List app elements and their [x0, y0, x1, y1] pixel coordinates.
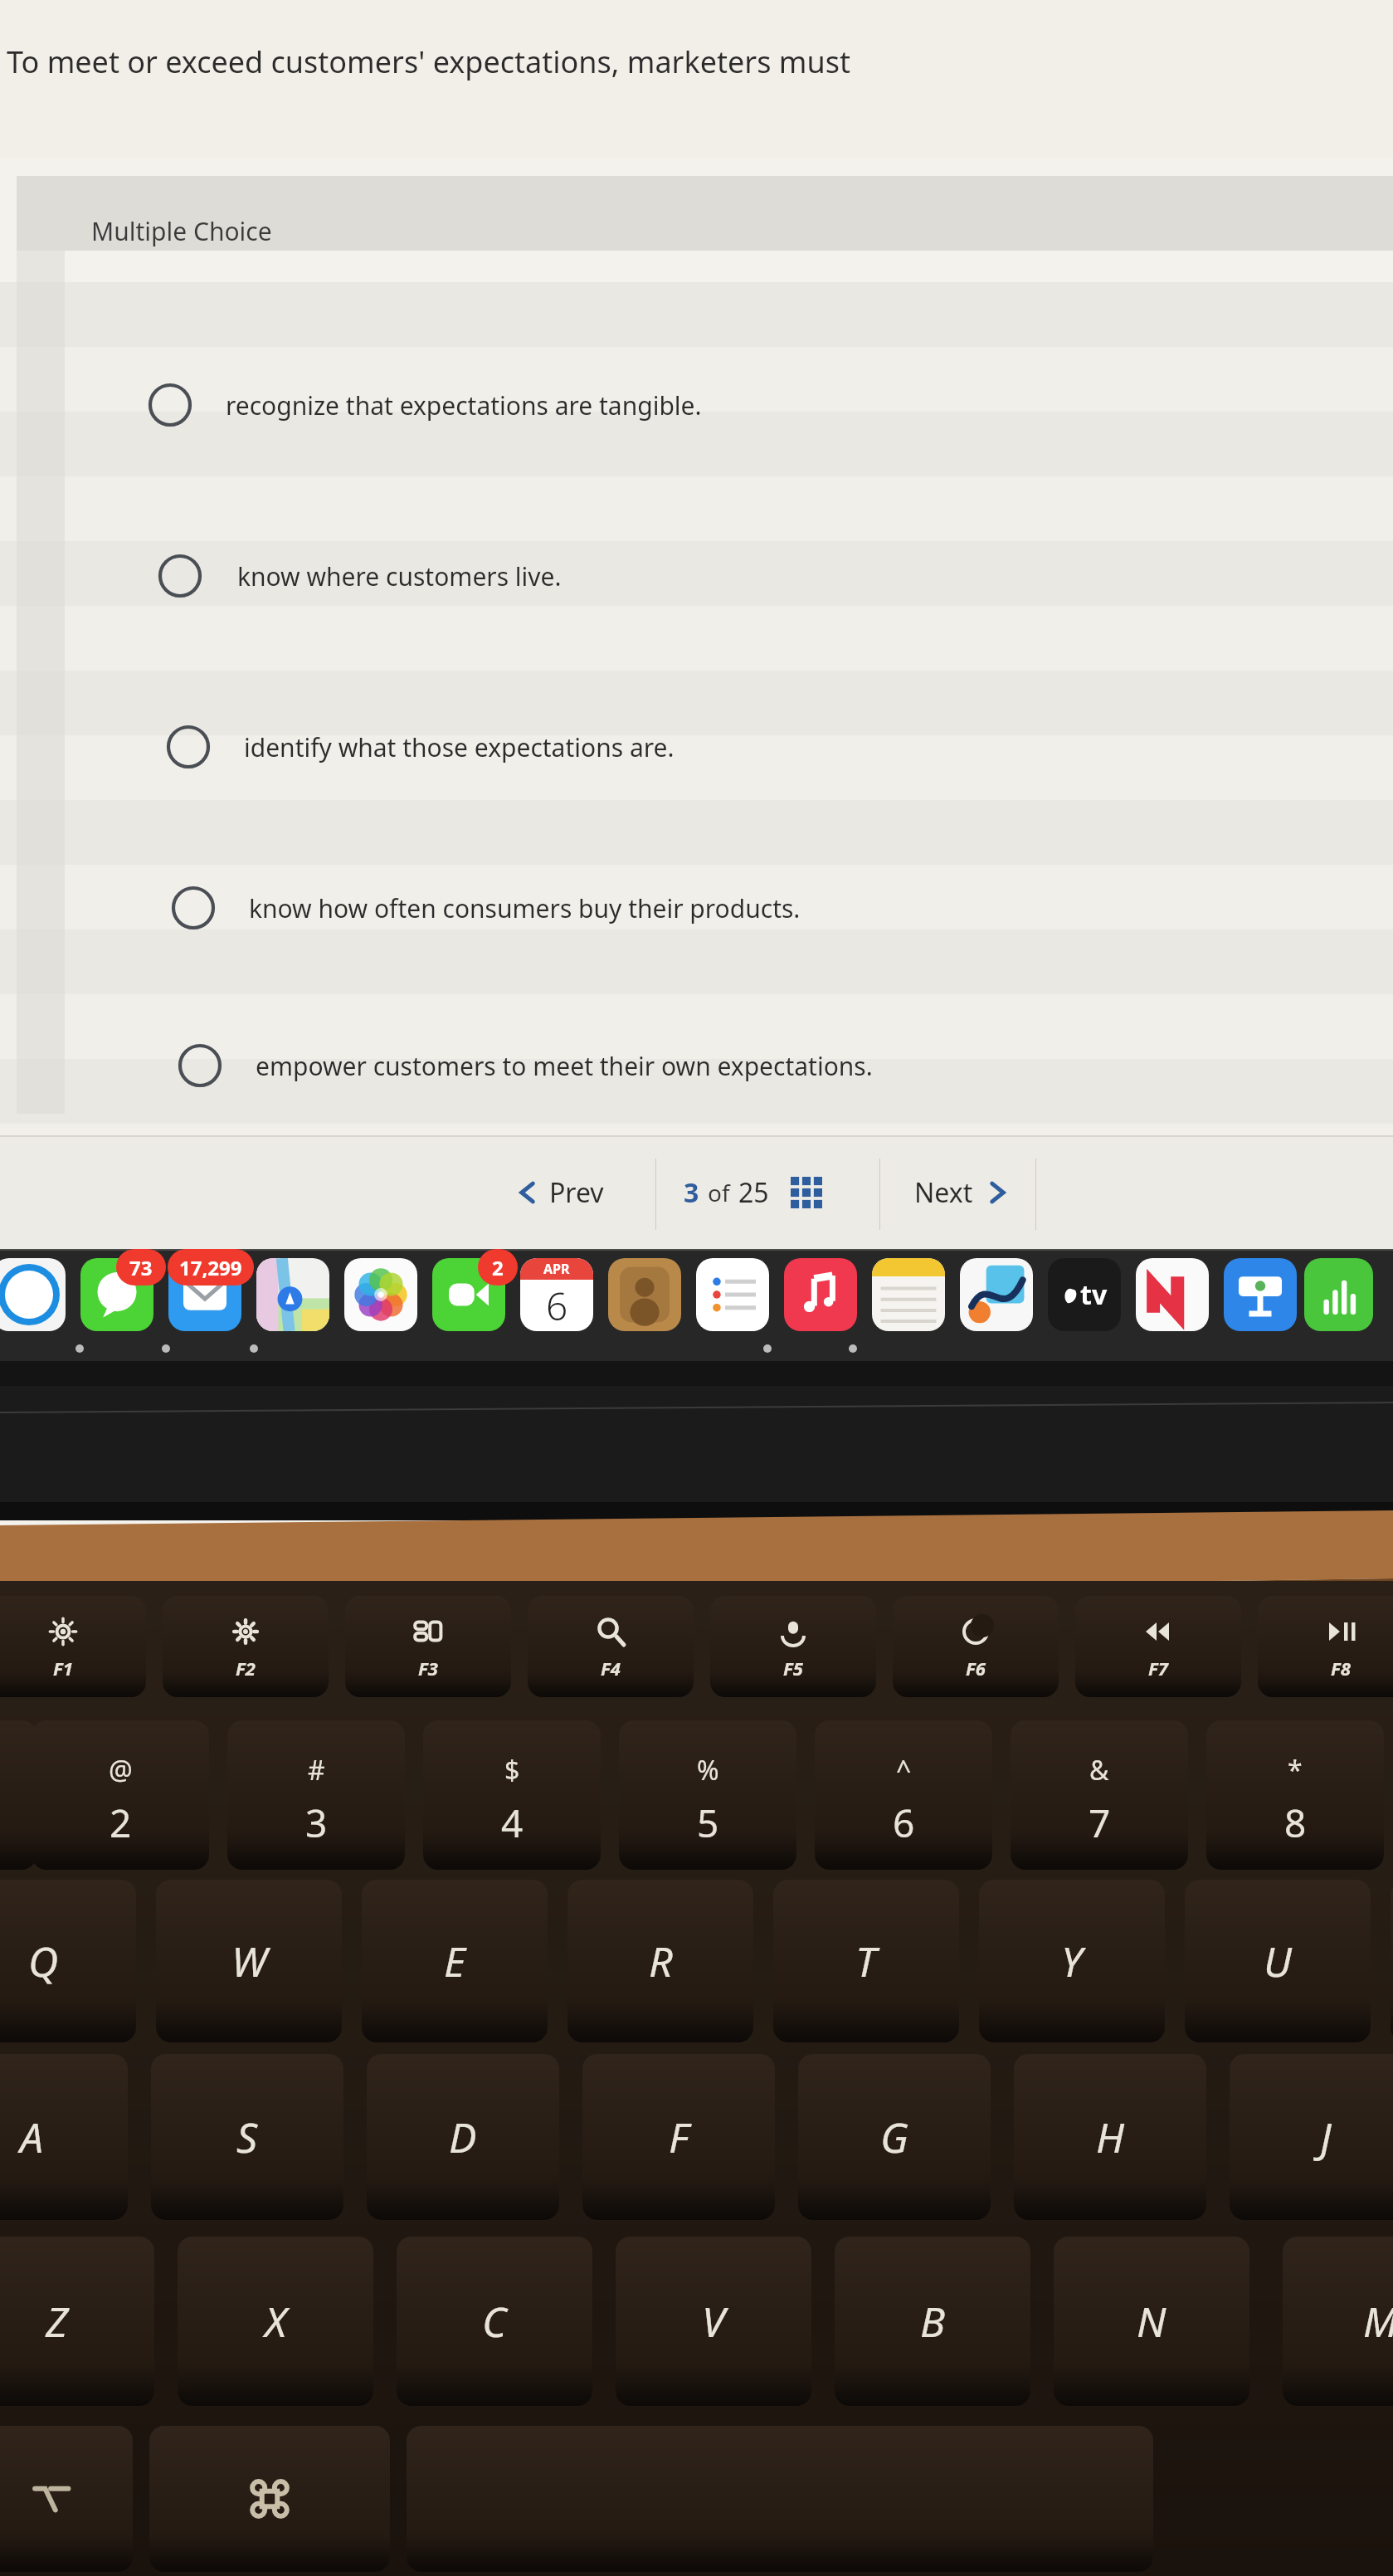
- button[interactable]: W: [156, 1880, 342, 2042]
- staticText: empower customers to meet their own expe…: [256, 1049, 873, 1083]
- button[interactable]: [337, 1242, 425, 1357]
- button[interactable]: [1391, 1880, 1393, 2042]
- button[interactable]: G: [798, 2054, 991, 2220]
- button[interactable]: X: [178, 2237, 373, 2406]
- staticText: tv: [1080, 1276, 1108, 1313]
- staticText: F7: [1148, 1656, 1168, 1681]
- button[interactable]: S: [151, 2054, 343, 2220]
- staticText: &: [1089, 1752, 1109, 1788]
- staticText: N: [1137, 2293, 1167, 2349]
- button[interactable]: 73: [73, 1242, 161, 1357]
- staticText: F6: [966, 1656, 986, 1681]
- button[interactable]: T: [773, 1880, 959, 2042]
- button[interactable]: E: [362, 1880, 548, 2042]
- button[interactable]: F8: [1258, 1596, 1393, 1697]
- staticText: F: [669, 2109, 689, 2165]
- button[interactable]: tv: [1040, 1242, 1128, 1357]
- button[interactable]: recognize that expectations are tangible…: [50, 357, 1393, 453]
- button[interactable]: F: [582, 2054, 775, 2220]
- staticText: Prev: [549, 1174, 604, 1211]
- button[interactable]: V: [616, 2237, 811, 2406]
- staticText: Y: [1061, 1933, 1083, 1989]
- button[interactable]: [777, 1242, 865, 1357]
- staticText: 7: [1089, 1797, 1111, 1849]
- button[interactable]: 2: [425, 1242, 513, 1357]
- button[interactable]: know how often consumers buy their produ…: [50, 860, 1393, 956]
- button[interactable]: [0, 2426, 133, 2572]
- button[interactable]: [1216, 1242, 1304, 1357]
- staticText: 8: [1284, 1797, 1307, 1849]
- button[interactable]: #: [227, 1720, 405, 1870]
- button[interactable]: know where customers live.: [50, 528, 1393, 624]
- button[interactable]: F7: [1075, 1596, 1241, 1697]
- button[interactable]: A: [0, 2054, 128, 2220]
- button[interactable]: 17,299: [161, 1242, 249, 1357]
- button[interactable]: ^: [815, 1720, 992, 1870]
- staticText: 25: [738, 1174, 769, 1211]
- staticText: @: [109, 1752, 133, 1788]
- staticText: S: [236, 2109, 258, 2165]
- button[interactable]: &: [1011, 1720, 1188, 1870]
- staticText: F1: [53, 1656, 73, 1681]
- button[interactable]: [407, 2426, 1153, 2572]
- button[interactable]: 3: [684, 1159, 826, 1227]
- button[interactable]: [149, 2426, 390, 2572]
- button[interactable]: F4: [528, 1596, 694, 1697]
- button[interactable]: Prev: [516, 1159, 604, 1227]
- button[interactable]: %: [619, 1720, 796, 1870]
- button[interactable]: B: [835, 2237, 1030, 2406]
- staticText: B: [920, 2293, 945, 2349]
- staticText: G: [880, 2109, 908, 2165]
- button[interactable]: identify what those expectations are.: [50, 699, 1393, 795]
- staticText: C: [482, 2293, 507, 2349]
- staticText: M: [1363, 2293, 1393, 2349]
- button[interactable]: Next: [914, 1159, 1008, 1227]
- staticText: F5: [783, 1656, 803, 1681]
- button[interactable]: Z: [0, 2237, 154, 2406]
- button[interactable]: *: [1206, 1720, 1384, 1870]
- button[interactable]: [1304, 1242, 1373, 1357]
- button[interactable]: Q: [0, 1880, 136, 2042]
- button[interactable]: F2: [163, 1596, 329, 1697]
- button[interactable]: F1: [0, 1596, 146, 1697]
- staticText: 3: [305, 1797, 328, 1849]
- staticText: 4: [501, 1797, 524, 1849]
- button[interactable]: [601, 1242, 689, 1357]
- button[interactable]: F5: [710, 1596, 876, 1697]
- button[interactable]: U: [1185, 1880, 1371, 2042]
- staticText: V: [702, 2293, 725, 2349]
- button[interactable]: C: [397, 2237, 592, 2406]
- button[interactable]: [689, 1242, 777, 1357]
- button[interactable]: N: [1054, 2237, 1249, 2406]
- button[interactable]: R: [567, 1880, 753, 2042]
- staticText: J: [1320, 2109, 1332, 2165]
- button[interactable]: F6: [893, 1596, 1059, 1697]
- button[interactable]: [249, 1242, 337, 1357]
- staticText: of: [708, 1177, 730, 1208]
- button[interactable]: M: [1283, 2237, 1393, 2406]
- staticText: R: [649, 1933, 673, 1989]
- button[interactable]: J: [1230, 2054, 1393, 2220]
- button[interactable]: [0, 1242, 73, 1357]
- staticText: APR: [543, 1260, 570, 1278]
- button[interactable]: [952, 1242, 1040, 1357]
- button[interactable]: empower customers to meet their own expe…: [50, 1017, 1393, 1114]
- button[interactable]: $: [423, 1720, 601, 1870]
- staticText: identify what those expectations are.: [244, 730, 675, 764]
- button[interactable]: [865, 1242, 952, 1357]
- staticText: F3: [418, 1656, 438, 1681]
- button[interactable]: D: [367, 2054, 559, 2220]
- button[interactable]: F3: [345, 1596, 511, 1697]
- staticText: F4: [601, 1656, 621, 1681]
- button[interactable]: [0, 1720, 37, 1870]
- button[interactable]: [1128, 1242, 1216, 1357]
- button[interactable]: @: [32, 1720, 209, 1870]
- button[interactable]: Y: [979, 1880, 1165, 2042]
- button[interactable]: APR: [513, 1242, 601, 1357]
- staticText: U: [1264, 1933, 1292, 1989]
- staticText: know where customers live.: [237, 559, 562, 593]
- staticText: %: [697, 1752, 719, 1788]
- staticText: F2: [236, 1656, 256, 1681]
- button[interactable]: Question grid: [787, 1173, 826, 1212]
- button[interactable]: H: [1014, 2054, 1206, 2220]
